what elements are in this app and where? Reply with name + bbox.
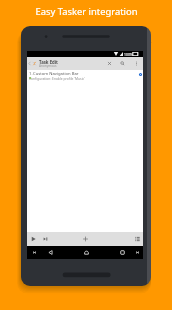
- button[interactable]: Play: [28, 232, 39, 246]
- staticText: Anonymous: [39, 64, 57, 68]
- button[interactable]: Navigate up: [27, 57, 32, 70]
- button[interactable]: Next: [40, 232, 51, 246]
- staticText: 1.: [29, 71, 33, 77]
- staticText: 100%: [124, 52, 133, 57]
- button[interactable]: Close: [104, 57, 115, 70]
- staticText: Easy Tasker integration: [35, 5, 138, 18]
- button[interactable]: Recent apps: [117, 246, 128, 259]
- button[interactable]: 1.: [27, 70, 143, 81]
- button[interactable]: Search: [117, 57, 128, 70]
- button[interactable]: List view: [132, 232, 143, 246]
- button[interactable]: Menu: [132, 246, 143, 259]
- button[interactable]: Back: [45, 246, 56, 259]
- staticText: Custom Navigation Bar: [33, 71, 79, 77]
- button[interactable]: More options: [131, 57, 142, 70]
- button[interactable]: Add action: [80, 232, 91, 246]
- button[interactable]: Home: [81, 246, 92, 259]
- staticText: Configuration: Enable profile 'Music': [29, 76, 85, 80]
- staticText: Task Edit: [39, 59, 58, 65]
- button[interactable]: Help: [136, 70, 145, 81]
- button[interactable]: Switch input method: [29, 246, 40, 259]
